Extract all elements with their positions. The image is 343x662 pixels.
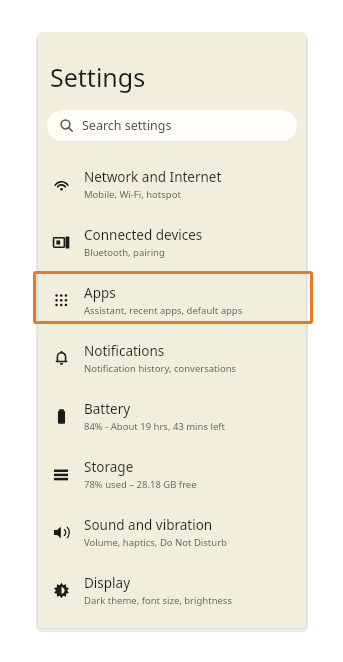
staticText: Sound and vibration xyxy=(84,516,213,534)
other: Network and Internet xyxy=(53,176,70,193)
button[interactable]: Storage xyxy=(38,445,306,503)
button[interactable]: Notifications xyxy=(38,329,306,387)
staticText: Display xyxy=(84,574,131,592)
staticText: Connected devices xyxy=(84,226,203,244)
button[interactable]: Sound and vibration xyxy=(38,503,306,561)
other: Storage xyxy=(53,466,69,482)
button[interactable]: Search settings xyxy=(47,110,297,141)
other: Apps xyxy=(54,293,69,308)
other: Battery xyxy=(53,408,70,425)
other: Notifications xyxy=(53,350,70,367)
other: Display xyxy=(53,582,70,599)
other: Connected devices xyxy=(53,234,70,251)
staticText: Network and Internet xyxy=(84,168,222,186)
staticText: Volume, haptics, Do Not Disturb xyxy=(84,536,227,549)
button[interactable]: Network and Internet xyxy=(38,155,306,213)
staticText: Notifications xyxy=(84,342,165,360)
staticText: Storage xyxy=(84,458,134,476)
staticText: Dark theme, font size, brightness xyxy=(84,594,232,607)
staticText: Assistant, recent apps, default apps xyxy=(84,304,243,317)
staticText: Bluetooth, pairing xyxy=(84,246,165,259)
staticText: Mobile, Wi-Fi, hotspot xyxy=(84,188,181,201)
staticText: 84% - About 19 hrs, 43 mins left xyxy=(84,420,225,433)
staticText: Notification history, conversations xyxy=(84,362,237,375)
staticText: Settings xyxy=(50,60,146,94)
staticText: Search settings xyxy=(82,117,172,134)
button[interactable]: Connected devices xyxy=(38,213,306,271)
staticText: Apps xyxy=(84,284,116,302)
staticText: 78% used – 28.18 GB free xyxy=(84,478,197,491)
button[interactable]: Display xyxy=(38,561,306,619)
button[interactable]: Battery xyxy=(38,387,306,445)
button[interactable]: Apps xyxy=(38,271,306,329)
other: Sound and vibration xyxy=(53,524,70,541)
staticText: Battery xyxy=(84,400,131,418)
